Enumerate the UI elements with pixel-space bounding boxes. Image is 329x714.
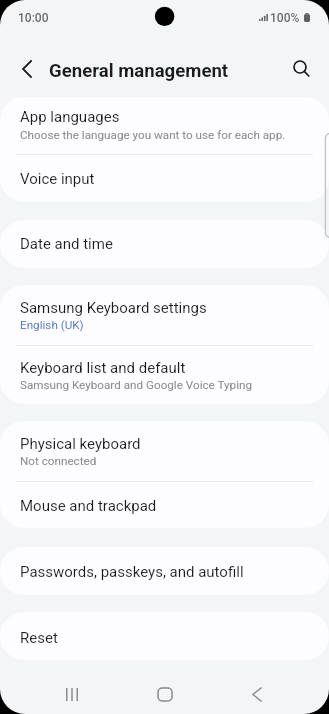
staticText: 100% — [270, 11, 300, 25]
staticText: Passwords, passkeys, and autofill — [20, 563, 244, 581]
staticText: Samsung Keyboard settings — [20, 299, 207, 317]
button[interactable]: Home — [145, 674, 185, 714]
button[interactable]: Back — [237, 674, 277, 714]
staticText: App languages — [20, 108, 120, 126]
staticText: Physical keyboard — [20, 435, 141, 453]
button[interactable]: Recent apps — [52, 674, 92, 714]
staticText: Reset — [20, 629, 58, 647]
staticText: 10:00 — [18, 11, 49, 25]
button[interactable]: Search — [283, 50, 317, 84]
staticText: Not connected — [20, 454, 97, 468]
button[interactable] — [0, 220, 329, 268]
staticText: Mouse and trackpad — [20, 497, 157, 515]
staticText: Keyboard list and default — [20, 359, 186, 377]
staticText: English (UK) — [20, 318, 84, 332]
staticText: General management — [49, 60, 229, 82]
button[interactable] — [0, 285, 329, 345]
button[interactable] — [0, 612, 329, 660]
staticText: Samsung Keyboard and Google Voice Typing — [20, 378, 252, 392]
button[interactable] — [0, 97, 329, 154]
staticText: Date and time — [20, 235, 113, 253]
staticText: Choose the language you want to use for … — [20, 128, 286, 142]
button[interactable] — [0, 346, 329, 404]
staticText: Voice input — [20, 170, 95, 188]
button[interactable]: Back — [10, 52, 44, 86]
button[interactable] — [0, 421, 329, 481]
button[interactable] — [0, 547, 329, 595]
button[interactable] — [0, 482, 329, 528]
button[interactable] — [0, 155, 329, 201]
